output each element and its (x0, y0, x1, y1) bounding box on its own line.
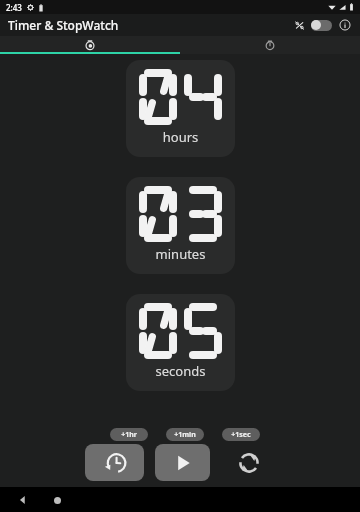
staticText: hours (126, 128, 235, 146)
button[interactable]: History (85, 444, 144, 481)
button[interactable]: Vibration off (291, 17, 307, 33)
button[interactable]: +1min (166, 428, 204, 441)
button[interactable]: Back (14, 491, 32, 509)
button[interactable]: Sound toggle (310, 17, 332, 33)
button[interactable]: hours (126, 60, 235, 157)
staticText: Timer & StopWatch (8, 17, 119, 33)
button[interactable]: +1hr (110, 428, 148, 441)
button[interactable]: Timer tab (0, 36, 180, 54)
button[interactable]: Info (336, 16, 354, 34)
staticText: 2:43 (6, 2, 22, 13)
button[interactable]: Stopwatch tab (180, 36, 360, 54)
button[interactable]: Start (155, 444, 210, 481)
staticText: +1hr (110, 430, 148, 440)
button[interactable]: Repeat (232, 446, 266, 480)
button[interactable]: Home (48, 491, 66, 509)
staticText: minutes (126, 245, 235, 263)
button[interactable]: minutes (126, 177, 235, 274)
button[interactable]: seconds (126, 294, 235, 391)
staticText: seconds (126, 362, 235, 380)
button[interactable]: +1sec (222, 428, 260, 441)
staticText: +1sec (222, 430, 260, 440)
staticText: +1min (166, 430, 204, 440)
